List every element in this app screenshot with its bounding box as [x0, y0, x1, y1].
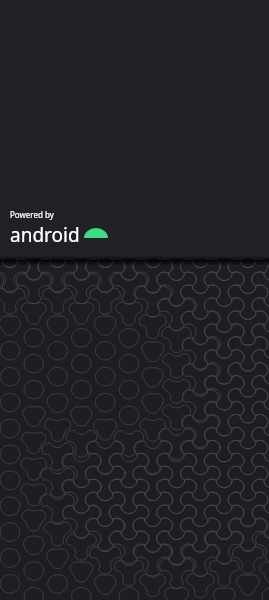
- staticText: android: [10, 222, 80, 248]
- staticText: Powered by: [10, 209, 54, 220]
